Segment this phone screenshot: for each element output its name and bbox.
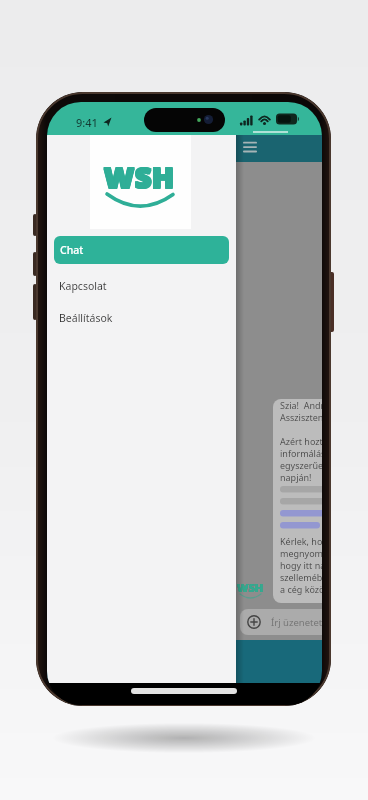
staticText: 9:41 xyxy=(76,115,98,130)
staticText: WSH xyxy=(103,156,174,195)
staticText: Beállítások xyxy=(59,311,113,325)
staticText: WSH xyxy=(237,580,264,595)
staticText: informálásroute xyxy=(280,447,322,459)
staticText: WSH xyxy=(237,580,264,595)
staticText: WSH xyxy=(105,156,176,195)
staticText: WSH xyxy=(103,158,174,197)
staticText: WSH xyxy=(237,580,264,595)
staticText: a cég közös xyxy=(280,583,322,595)
staticText: WSH xyxy=(237,580,264,595)
staticText: WSH xyxy=(105,158,176,197)
staticText: WSH xyxy=(103,157,174,196)
staticText: megnyomni xyxy=(280,547,322,559)
button[interactable]: Kapcsolat xyxy=(47,272,235,300)
button[interactable]: Chat xyxy=(54,236,229,264)
button[interactable] xyxy=(247,615,261,629)
staticText: Asszisztense xyxy=(280,411,322,423)
staticText: Kérlek, hog xyxy=(280,535,322,547)
staticText: szellemében xyxy=(280,571,322,583)
staticText: Chat xyxy=(60,243,84,257)
staticText: hogy itt nag xyxy=(280,559,322,571)
staticText: Írj üzenetet xyxy=(271,616,322,629)
button[interactable] xyxy=(240,609,322,635)
staticText: Azért hoztam xyxy=(280,435,322,447)
staticText: Szia! Andrea xyxy=(280,399,322,411)
staticText: WSH xyxy=(104,157,175,196)
staticText: WSH xyxy=(105,157,176,196)
staticText: WSH xyxy=(237,580,264,595)
staticText: WSH xyxy=(237,580,264,595)
button[interactable] xyxy=(239,138,261,158)
staticText: Kapcsolat xyxy=(59,279,107,293)
staticText: WSH xyxy=(104,156,175,195)
button[interactable]: Beállítások xyxy=(47,304,235,332)
staticText: egyszerűen m xyxy=(280,459,322,471)
staticText: napján! xyxy=(280,471,312,483)
staticText: WSH xyxy=(237,580,264,595)
staticText: WSH xyxy=(104,158,175,197)
staticText: WSH xyxy=(237,580,264,595)
staticText: WSH xyxy=(237,580,264,595)
